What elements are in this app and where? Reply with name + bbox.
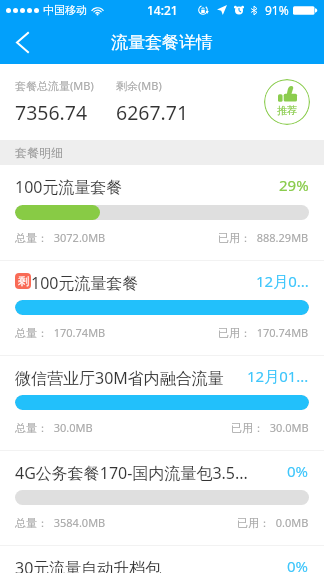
staticText: 总量： 170.74MB bbox=[15, 325, 106, 340]
button[interactable]: 30元流量自动升档包 bbox=[0, 545, 324, 573]
staticText: 12月0... bbox=[256, 271, 309, 291]
staticText: 剩 bbox=[18, 274, 29, 288]
staticText: 套餐明细 bbox=[15, 145, 63, 160]
staticText: 套餐总流量(MB) bbox=[15, 78, 94, 93]
staticText: 100元流量套餐 bbox=[15, 176, 273, 198]
staticText: 中国移动 bbox=[43, 3, 87, 17]
staticText: 12月01... bbox=[247, 366, 309, 386]
staticText: 6267.71 bbox=[116, 99, 189, 126]
staticText: 总量： 30.0MB bbox=[15, 420, 93, 435]
staticText: 已用： 888.29MB bbox=[218, 230, 309, 245]
button[interactable]: 100元流量套餐 bbox=[0, 165, 324, 260]
staticText: 已用： 0.0MB bbox=[237, 515, 309, 530]
staticText: 微信营业厅30M省内融合流量 bbox=[15, 367, 241, 389]
staticText: 总量： 3584.0MB bbox=[15, 515, 106, 530]
staticText: 剩余(MB) bbox=[116, 78, 162, 93]
staticText: 100元流量套餐 bbox=[31, 272, 250, 294]
staticText: 7356.74 bbox=[15, 99, 88, 126]
staticText: 29% bbox=[279, 175, 309, 195]
staticText: 0% bbox=[287, 461, 309, 481]
staticText: 14:21 bbox=[147, 2, 178, 18]
button[interactable]: 推荐 bbox=[264, 79, 310, 125]
staticText: 流量套餐详情 bbox=[111, 32, 213, 53]
button[interactable]: 微信营业厅30M省内融合流量 bbox=[0, 355, 324, 450]
button[interactable]: Back bbox=[0, 20, 44, 64]
staticText: 91% bbox=[265, 2, 289, 18]
staticText: 0% bbox=[287, 556, 309, 573]
button[interactable]: 剩 bbox=[0, 260, 324, 355]
staticText: 已用： 30.0MB bbox=[231, 420, 309, 435]
staticText: 4G公务套餐170-国内流量包3.5... bbox=[15, 462, 281, 484]
staticText: 30元流量自动升档包 bbox=[15, 557, 281, 573]
staticText: 推荐 bbox=[277, 104, 297, 117]
staticText: 总量： 3072.0MB bbox=[15, 230, 106, 245]
staticText: 已用： 170.74MB bbox=[218, 325, 309, 340]
button[interactable]: 4G公务套餐170-国内流量包3.5... bbox=[0, 450, 324, 545]
